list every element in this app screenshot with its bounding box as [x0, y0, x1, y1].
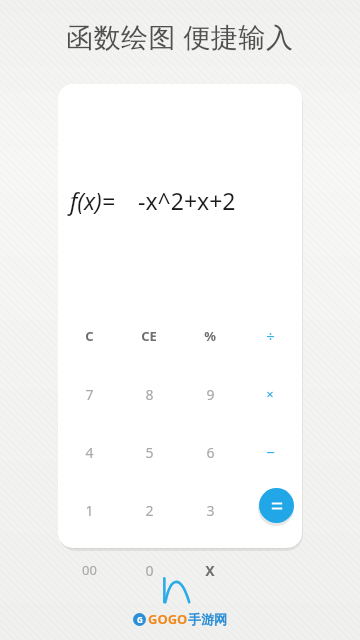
button[interactable]: ÷: [248, 321, 292, 351]
staticText: 00: [82, 561, 97, 579]
button[interactable]: 7: [67, 379, 111, 409]
button[interactable]: 6: [188, 437, 232, 467]
staticText: −: [266, 442, 275, 462]
staticText: G: [137, 614, 143, 625]
staticText: 2: [145, 501, 154, 520]
button[interactable]: 0: [127, 555, 171, 585]
staticText: 5: [145, 443, 154, 462]
button[interactable]: %: [188, 321, 232, 351]
button[interactable]: 00: [67, 555, 111, 585]
staticText: 6: [206, 443, 215, 462]
staticText: ÷: [266, 326, 275, 346]
button[interactable]: 4: [67, 437, 111, 467]
staticText: 手游网: [188, 611, 227, 627]
button[interactable]: 2: [127, 495, 171, 525]
button[interactable]: 5: [127, 437, 171, 467]
staticText: ×: [266, 385, 274, 403]
staticText: 9: [206, 385, 215, 404]
staticText: 1: [85, 501, 94, 520]
button[interactable]: +: [248, 495, 292, 525]
button[interactable]: ×: [248, 379, 292, 409]
button[interactable]: f(x)=: [70, 180, 314, 220]
button[interactable]: Equals: [259, 488, 294, 523]
button[interactable]: 9: [188, 379, 232, 409]
staticText: 3: [206, 501, 215, 520]
button[interactable]: X: [188, 555, 232, 585]
button[interactable]: CE: [127, 321, 171, 351]
button[interactable]: 8: [127, 379, 171, 409]
staticText: -x^2+x+2: [138, 185, 236, 216]
button[interactable]: C: [67, 321, 111, 351]
staticText: 7: [85, 385, 94, 404]
staticText: 函数绘图 便捷输入: [66, 18, 294, 55]
staticText: 8: [145, 385, 154, 404]
staticText: GOGO: [148, 610, 188, 628]
staticText: +: [266, 500, 275, 520]
button[interactable]: 3: [188, 495, 232, 525]
staticText: %: [204, 327, 216, 345]
staticText: C: [85, 327, 94, 345]
staticText: 4: [85, 443, 94, 462]
staticText: f(x)=: [70, 185, 115, 216]
staticText: CE: [141, 327, 157, 345]
staticText: X: [205, 561, 215, 580]
staticText: 0: [145, 561, 154, 580]
button[interactable]: −: [248, 437, 292, 467]
button[interactable]: 1: [67, 495, 111, 525]
